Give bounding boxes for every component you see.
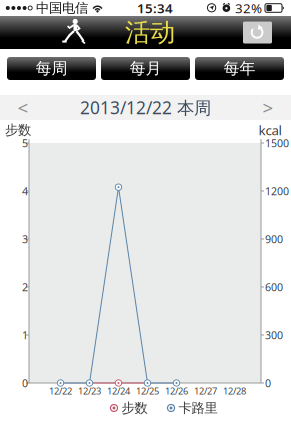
staticText: 300 — [265, 328, 283, 342]
staticText: kcal — [258, 121, 281, 139]
button[interactable]: 每周 — [7, 57, 96, 80]
staticText: 每周 — [35, 59, 67, 78]
staticText: 4 — [22, 184, 28, 198]
staticText: 12/24 — [107, 385, 130, 397]
staticText: 32% — [235, 0, 262, 17]
staticText: 每年 — [223, 59, 255, 78]
staticText: 活动 — [125, 17, 175, 48]
button[interactable]: 每月 — [101, 57, 190, 80]
staticText: 12/25 — [136, 385, 159, 397]
staticText: 0 — [265, 376, 271, 390]
staticText: 12/28 — [223, 385, 246, 397]
staticText: 12/27 — [194, 385, 217, 397]
staticText: 0 — [22, 376, 28, 390]
button[interactable]: 每年 — [195, 57, 284, 80]
button[interactable]: Refresh — [243, 21, 272, 43]
staticText: 12/23 — [78, 385, 101, 397]
staticText: > — [262, 95, 273, 120]
staticText: 每月 — [129, 59, 161, 78]
staticText: 中国电信 — [36, 0, 88, 16]
staticText: 15:34 — [137, 0, 173, 17]
staticText: 2013/12/22 本周 — [80, 96, 211, 119]
staticText: 步数 — [5, 122, 31, 138]
staticText: 5 — [22, 136, 28, 150]
button[interactable]: < — [0, 95, 46, 120]
button[interactable]: > — [245, 95, 291, 120]
staticText: 900 — [265, 232, 283, 246]
staticText: 步数 — [121, 400, 147, 416]
staticText: 1500 — [265, 136, 289, 150]
staticText: 卡路里 — [178, 400, 217, 416]
staticText: 12/26 — [165, 385, 188, 397]
staticText: 1 — [22, 328, 28, 342]
staticText: 600 — [265, 280, 283, 294]
staticText: 3 — [22, 232, 28, 246]
staticText: 12/22 — [49, 385, 72, 397]
staticText: < — [17, 95, 28, 120]
staticText: 1200 — [265, 184, 289, 198]
staticText: 2 — [22, 280, 28, 294]
